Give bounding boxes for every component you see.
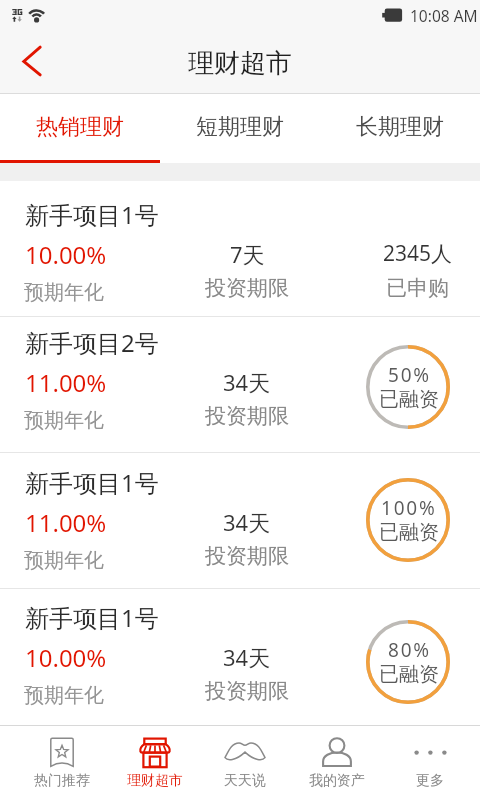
- button[interactable]: 短期理财: [160, 94, 320, 163]
- staticText: 80%: [388, 637, 431, 663]
- staticText: 热门推荐: [34, 772, 90, 790]
- button[interactable]: 更多: [384, 725, 476, 800]
- staticText: 11.00%: [25, 366, 107, 399]
- button[interactable]: 热销理财: [0, 94, 160, 163]
- staticText: 投资期限: [205, 275, 289, 301]
- staticText: 50%: [388, 362, 431, 388]
- staticText: 10.00%: [25, 238, 107, 271]
- staticText: 新手项目1号: [25, 198, 159, 231]
- staticText: 预期年化: [24, 548, 104, 573]
- staticText: 热销理财: [36, 113, 124, 141]
- button[interactable]: 新手项目1号: [0, 453, 480, 588]
- staticText: 34天: [223, 507, 271, 537]
- button[interactable]: 长期理财: [320, 94, 480, 163]
- staticText: 11.00%: [25, 506, 107, 539]
- staticText: 34天: [223, 642, 271, 672]
- staticText: 新手项目1号: [25, 466, 159, 499]
- staticText: 已融资: [379, 520, 439, 545]
- staticText: 投资期限: [205, 543, 289, 569]
- button[interactable]: 天天说: [199, 725, 291, 800]
- staticText: 预期年化: [24, 408, 104, 433]
- staticText: 我的资产: [309, 772, 365, 790]
- staticText: 新手项目2号: [25, 326, 159, 359]
- button[interactable]: 我的资产: [291, 725, 383, 800]
- staticText: 预期年化: [24, 683, 104, 708]
- staticText: 预期年化: [24, 280, 104, 305]
- staticText: 理财超市: [188, 47, 292, 80]
- button[interactable]: 新手项目1号: [0, 589, 480, 724]
- button[interactable]: 新手项目1号: [0, 181, 480, 316]
- staticText: 2345人: [383, 239, 453, 268]
- staticText: 更多: [416, 772, 444, 790]
- staticText: 10:08 AM: [410, 5, 478, 26]
- staticText: 7天: [230, 239, 265, 269]
- button[interactable]: 热门推荐: [16, 725, 108, 800]
- staticText: 短期理财: [196, 113, 284, 141]
- staticText: 34天: [223, 367, 271, 397]
- staticText: 理财超市: [127, 772, 183, 790]
- staticText: 新手项目1号: [25, 601, 159, 634]
- staticText: 投资期限: [205, 678, 289, 704]
- staticText: 投资期限: [205, 403, 289, 429]
- staticText: 10.00%: [25, 641, 107, 674]
- staticText: 100%: [381, 495, 437, 521]
- button[interactable]: Back: [0, 33, 64, 94]
- button[interactable]: 新手项目2号: [0, 317, 480, 452]
- staticText: 已融资: [379, 662, 439, 687]
- staticText: 天天说: [224, 772, 266, 790]
- button[interactable]: 理财超市: [109, 725, 201, 800]
- staticText: 已融资: [379, 387, 439, 412]
- staticText: 已申购: [386, 275, 449, 301]
- staticText: 长期理财: [356, 113, 444, 141]
